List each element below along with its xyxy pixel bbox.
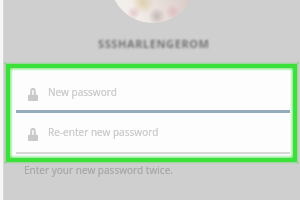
button[interactable]: Re-enter new password: [10, 114, 293, 158]
other: Profile photo: [110, 0, 195, 23]
staticText: Re-enter new password: [48, 125, 159, 139]
staticText: Enter your new password twice.: [24, 163, 173, 177]
staticText: SSSHARLENGEROM: [98, 36, 210, 51]
button[interactable]: New password: [10, 68, 293, 114]
staticText: New password: [48, 85, 117, 99]
